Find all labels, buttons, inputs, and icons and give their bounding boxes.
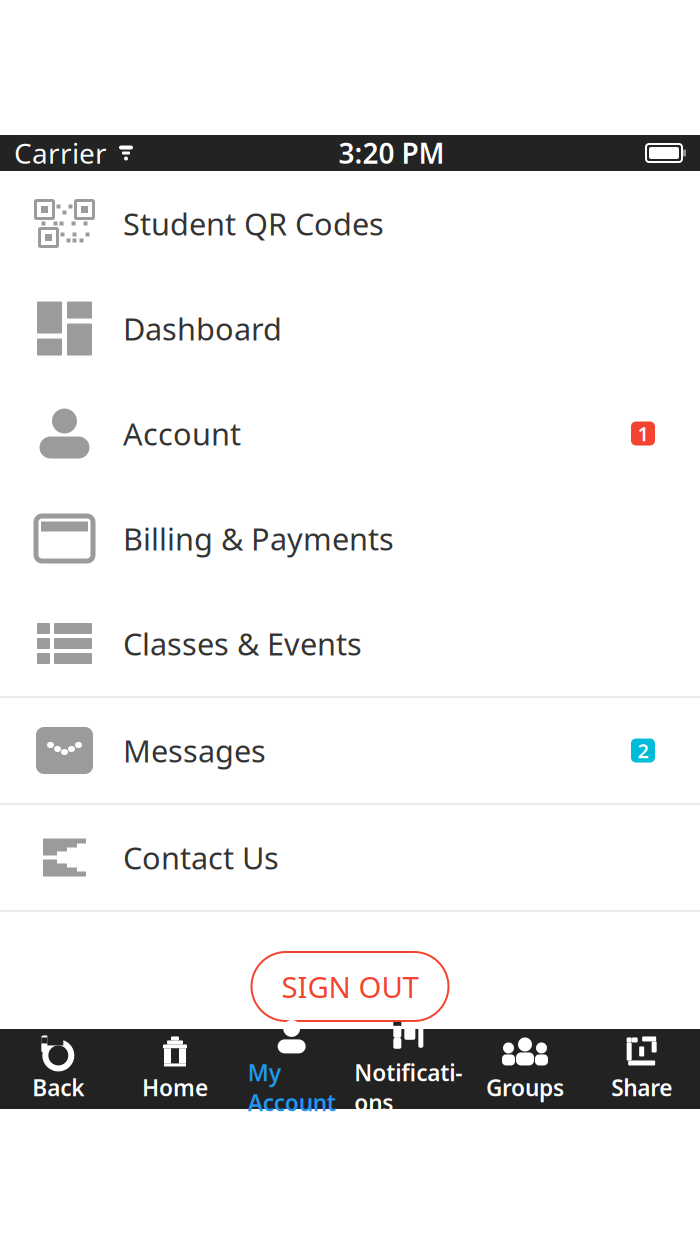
staticText: Notifications bbox=[354, 1057, 462, 1118]
staticText: Messages bbox=[123, 730, 266, 771]
button[interactable]: Notifications bbox=[350, 1029, 467, 1109]
staticText: Billing & Payments bbox=[123, 518, 394, 559]
staticText: 1 bbox=[637, 420, 648, 447]
staticText: Contact Us bbox=[123, 837, 279, 878]
button[interactable]: Home bbox=[117, 1029, 233, 1109]
staticText: Back bbox=[32, 1072, 84, 1102]
staticText: Carrier bbox=[14, 134, 107, 172]
staticText: Groups bbox=[486, 1072, 564, 1102]
button[interactable]: Messages bbox=[0, 698, 700, 803]
button[interactable]: Contact Us bbox=[0, 805, 700, 910]
button[interactable]: Share bbox=[583, 1029, 700, 1109]
button[interactable]: SIGN OUT bbox=[251, 952, 448, 1021]
staticText: SIGN OUT bbox=[281, 967, 418, 1006]
staticText: Student QR Codes bbox=[123, 203, 384, 244]
button[interactable]: Billing & Payments bbox=[0, 486, 700, 591]
button[interactable]: Groups bbox=[467, 1029, 583, 1109]
staticText: My Account bbox=[248, 1057, 336, 1118]
staticText: Classes & Events bbox=[123, 623, 362, 664]
staticText: Account bbox=[123, 413, 241, 454]
button[interactable]: Student QR Codes bbox=[0, 171, 700, 276]
button[interactable]: Dashboard bbox=[0, 276, 700, 381]
staticText: 2 bbox=[637, 737, 648, 764]
staticText: Share bbox=[611, 1072, 672, 1102]
button[interactable]: Account bbox=[0, 381, 700, 486]
staticText: 3:20 PM bbox=[338, 134, 444, 172]
button[interactable]: Classes & Events bbox=[0, 591, 700, 696]
button[interactable]: My Account bbox=[233, 1029, 350, 1109]
button[interactable]: Back bbox=[0, 1029, 117, 1109]
staticText: Home bbox=[142, 1072, 208, 1102]
staticText: Dashboard bbox=[123, 308, 282, 349]
